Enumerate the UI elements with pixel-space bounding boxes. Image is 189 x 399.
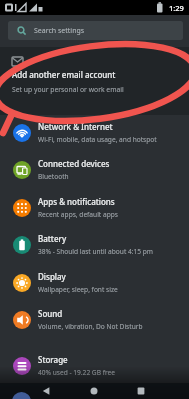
staticText: Add another email account (12, 69, 116, 80)
staticText: 38% - Should last until about 4:15 pm (38, 247, 154, 256)
staticText: Apps & notifications (38, 196, 115, 207)
button[interactable]: Connected devices (0, 151, 189, 188)
staticText: Search settings (34, 26, 85, 36)
staticText: Display (38, 271, 66, 282)
button[interactable]: Storage (0, 347, 189, 384)
staticText: Connected devices (38, 158, 110, 169)
button[interactable]: Apps & notifications (0, 189, 189, 226)
staticText: 40% used - 19.22 GB free (38, 368, 115, 377)
staticText: Volume, vibration, Do Not Disturb (38, 322, 143, 331)
button[interactable] (84, 383, 104, 399)
staticText: Recent apps, default apps (38, 210, 118, 219)
button[interactable]: Search settings (8, 21, 183, 40)
button[interactable] (36, 383, 56, 399)
button[interactable] (131, 383, 151, 399)
button[interactable]: Network & Internet (0, 114, 189, 151)
staticText: Bluetooth (38, 172, 69, 181)
button[interactable]: Sound (0, 301, 189, 338)
staticText: 1:29 (169, 3, 184, 13)
staticText: Wallpaper, sleep, font size (38, 285, 118, 294)
staticText: Sound (38, 308, 63, 319)
button[interactable]: Display (0, 264, 189, 301)
staticText: Battery (38, 233, 67, 244)
button[interactable]: Battery (0, 226, 189, 263)
staticText: Set up your personal or work email (12, 85, 124, 94)
button[interactable]: Add another email account (0, 47, 189, 115)
staticText: Wi-Fi, mobile, data usage, and hotspot (38, 135, 157, 144)
staticText: Storage (38, 354, 68, 365)
staticText: Network & Internet (38, 121, 113, 132)
